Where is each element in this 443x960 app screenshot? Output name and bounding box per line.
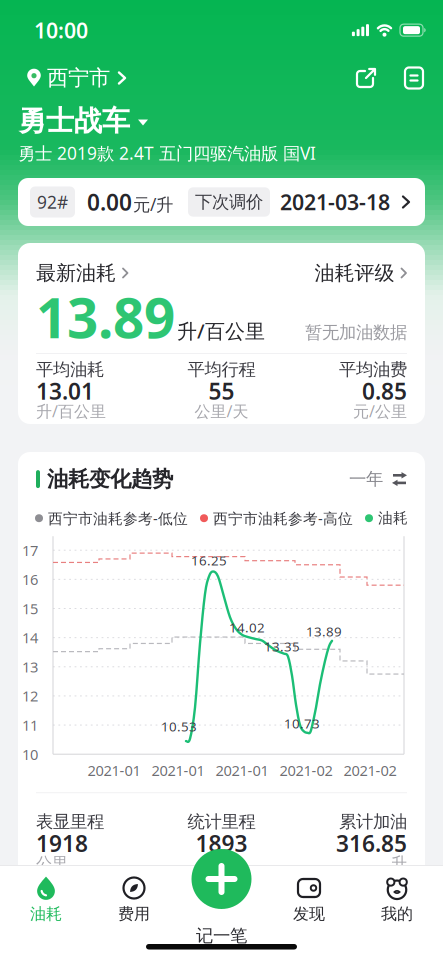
staticText: 油耗评级 — [314, 261, 394, 285]
staticText: 升/百公里 — [36, 400, 106, 422]
button[interactable]: 92# — [18, 178, 425, 226]
staticText: 累计加油 — [339, 811, 407, 832]
staticText: 0.00 — [87, 187, 132, 217]
staticText: 元/升 — [133, 193, 173, 216]
staticText: 14.02 — [229, 618, 265, 636]
staticText: 勇士战车 — [18, 104, 130, 138]
button[interactable]: 分享 — [351, 63, 381, 93]
staticText: 12 — [22, 686, 38, 706]
staticText: 升/百公里 — [177, 317, 265, 344]
staticText: 油耗 — [30, 904, 62, 924]
staticText: 公里 — [36, 853, 68, 873]
staticText: 16.25 — [191, 551, 227, 569]
staticText: 下次调价 — [195, 191, 263, 213]
staticText: 316.85 — [336, 828, 407, 858]
staticText: 16 — [22, 570, 38, 589]
staticText: 油耗 — [378, 509, 408, 527]
staticText: 0.85 — [362, 376, 407, 406]
staticText: 升 — [391, 853, 407, 873]
staticText: 13 — [22, 657, 38, 676]
staticText: 92# — [37, 190, 68, 213]
button[interactable]: 发现 — [265, 876, 353, 924]
button[interactable]: 切换区间 — [349, 468, 407, 490]
staticText: 1918 — [36, 828, 88, 858]
staticText: 西宁市油耗参考-低位 — [48, 508, 188, 528]
staticText: 14 — [22, 628, 38, 647]
staticText: 表显里程 — [36, 811, 104, 832]
staticText: 2021-03-18 — [280, 188, 390, 216]
staticText: 油耗变化趋势 — [47, 466, 173, 492]
staticText: 2021-01 — [215, 760, 268, 780]
button[interactable]: 西宁市 — [27, 65, 126, 91]
button[interactable]: 油耗评级 — [314, 261, 407, 285]
staticText: 1893 — [195, 828, 247, 858]
button[interactable]: 我的 — [353, 876, 441, 924]
staticText: 11 — [22, 715, 38, 735]
staticText: 一年 — [349, 468, 383, 490]
staticText: 13.01 — [36, 376, 94, 406]
button[interactable]: 最新油耗 — [36, 261, 128, 285]
staticText: 13.89 — [306, 622, 342, 640]
staticText: 平均行程 — [187, 359, 255, 380]
staticText: 2021-01 — [87, 760, 140, 780]
staticText: 费用 — [118, 904, 150, 924]
staticText: 平均油费 — [339, 359, 407, 380]
staticText: 元/公里 — [353, 400, 407, 422]
button[interactable]: 费用 — [90, 876, 178, 924]
staticText: 10:00 — [34, 16, 88, 44]
staticText: 15 — [22, 599, 38, 618]
button[interactable]: 记一笔 — [191, 849, 251, 909]
staticText: 最新油耗 — [36, 261, 116, 285]
button[interactable]: 勇士战车 — [18, 104, 443, 138]
staticText: 10.53 — [161, 717, 197, 735]
staticText: 记一笔 — [196, 925, 247, 946]
staticText: 55 — [208, 376, 234, 406]
staticText: 10 — [22, 744, 38, 764]
staticText: 17 — [22, 540, 38, 560]
staticText: 公里 — [205, 853, 237, 873]
staticText: 2021-02 — [279, 760, 332, 780]
staticText: 西宁市 — [47, 65, 110, 91]
staticText: 我的 — [381, 904, 413, 924]
staticText: 13.89 — [36, 281, 175, 353]
staticText: 发现 — [293, 904, 325, 924]
staticText: 13.35 — [264, 637, 300, 655]
staticText: 勇士 2019款 2.4T 五门四驱汽油版 国VI — [18, 141, 316, 164]
staticText: 暂无加油数据 — [305, 322, 407, 343]
staticText: 公里/天 — [194, 400, 248, 422]
staticText: 2021-01 — [151, 760, 204, 780]
button[interactable]: 油耗 — [2, 876, 90, 924]
staticText: 10.73 — [284, 714, 320, 732]
staticText: 统计里程 — [187, 811, 255, 832]
button[interactable]: 报告 — [401, 63, 427, 92]
staticText: 平均油耗 — [36, 359, 104, 380]
staticText: 2021-02 — [343, 760, 396, 780]
staticText: 西宁市油耗参考-高位 — [213, 508, 353, 528]
